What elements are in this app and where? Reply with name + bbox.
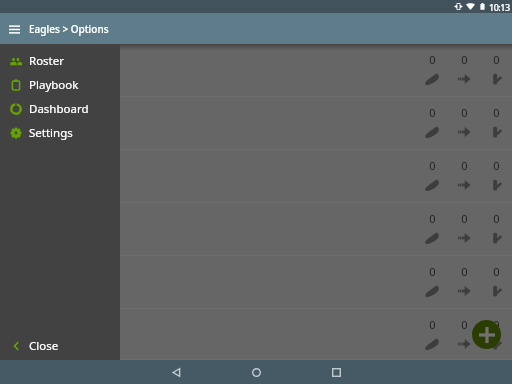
staticText: Dashboard [29, 101, 89, 117]
button[interactable]: Close [0, 332, 120, 360]
staticText: 0 [493, 317, 500, 332]
staticText: 0 [493, 211, 500, 226]
staticText: 0 [429, 317, 436, 332]
staticText: 0 [429, 158, 436, 173]
button[interactable]: Add [472, 320, 501, 349]
button[interactable]: Back [164, 360, 188, 384]
button[interactable]: Dashboard [0, 97, 120, 121]
button[interactable]: Open navigation drawer [0, 13, 29, 44]
staticText: 0 [461, 105, 468, 120]
staticText: 10:13 [489, 1, 510, 13]
staticText: 0 [429, 211, 436, 226]
staticText: Roster [29, 53, 65, 69]
button[interactable]: Roster [0, 49, 120, 73]
button[interactable]: Home [244, 360, 268, 384]
button[interactable]: 0 [0, 97, 512, 150]
button[interactable]: 0 [0, 309, 512, 360]
staticText: Playbook [29, 77, 79, 93]
staticText: 0 [429, 264, 436, 279]
staticText: 0 [461, 52, 468, 67]
staticText: Eagles > Options [29, 22, 109, 36]
button[interactable]: 0 [0, 150, 512, 203]
staticText: 0 [493, 105, 500, 120]
staticText: 0 [429, 52, 436, 67]
staticText: Settings [29, 125, 73, 141]
button[interactable]: 0 [0, 44, 512, 97]
button[interactable]: Recents [324, 360, 348, 384]
staticText: 0 [493, 158, 500, 173]
staticText: 0 [461, 211, 468, 226]
button[interactable]: Playbook [0, 73, 120, 97]
staticText: 0 [461, 317, 468, 332]
staticText: 0 [493, 52, 500, 67]
button[interactable]: 0 [0, 256, 512, 309]
button[interactable]: 0 [0, 203, 512, 256]
staticText: 0 [429, 105, 436, 120]
staticText: 0 [461, 158, 468, 173]
staticText: 0 [461, 264, 468, 279]
staticText: 0 [493, 264, 500, 279]
button[interactable]: Settings [0, 121, 120, 145]
staticText: Close [29, 338, 59, 354]
